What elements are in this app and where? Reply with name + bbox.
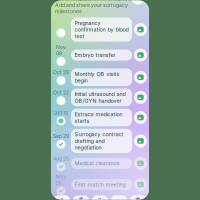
button[interactable]: May 06	[51, 174, 149, 195]
staticText: Oct 12	[53, 110, 68, 116]
staticText: Oct 29	[53, 69, 69, 75]
button[interactable]: Settings	[130, 195, 146, 200]
button[interactable]: Nov 09	[51, 44, 149, 66]
button[interactable]: Finances	[73, 195, 89, 200]
button[interactable]: Magic suggestions	[131, 0, 145, 4]
staticText: Medical clearance	[74, 160, 119, 167]
staticText: Aug 25	[53, 156, 69, 162]
staticText: Oct 22	[53, 90, 69, 96]
staticText: Sep 29	[53, 133, 69, 139]
staticText: May 06	[55, 174, 66, 186]
staticText: First match meeting	[74, 181, 125, 188]
staticText: The Egg Journey	[55, 0, 123, 1]
staticText: Pregnancy confirmation by blood test	[74, 20, 128, 39]
staticText: ✽	[135, 196, 141, 200]
staticText: Add and share your surrogacy milestones	[55, 2, 128, 14]
staticText: Estrace medication starts	[74, 111, 122, 124]
staticText: $	[79, 196, 83, 200]
button[interactable]: Profile	[111, 195, 127, 200]
button[interactable]: Oct 22	[51, 89, 149, 106]
button[interactable]	[51, 17, 149, 42]
staticText: Surrogacy contract drafting and negotiat…	[74, 131, 123, 151]
button[interactable]: Library	[92, 195, 108, 200]
button[interactable]: Sep 29	[51, 129, 149, 153]
button[interactable]: Oct 12	[51, 109, 149, 126]
staticText: Nov 09	[56, 44, 66, 56]
staticText: ▯	[98, 196, 102, 200]
button[interactable]: Oct 29	[51, 68, 149, 86]
button[interactable]: Aug 25	[51, 156, 149, 171]
staticText: Monthly OB visits begin	[74, 71, 119, 84]
button[interactable]: Journey	[54, 195, 70, 200]
staticText: Embryo transfer	[74, 52, 115, 58]
staticText: ◌	[117, 195, 121, 200]
staticText: Initial ultrasound and OB/GYN handover	[74, 91, 125, 104]
